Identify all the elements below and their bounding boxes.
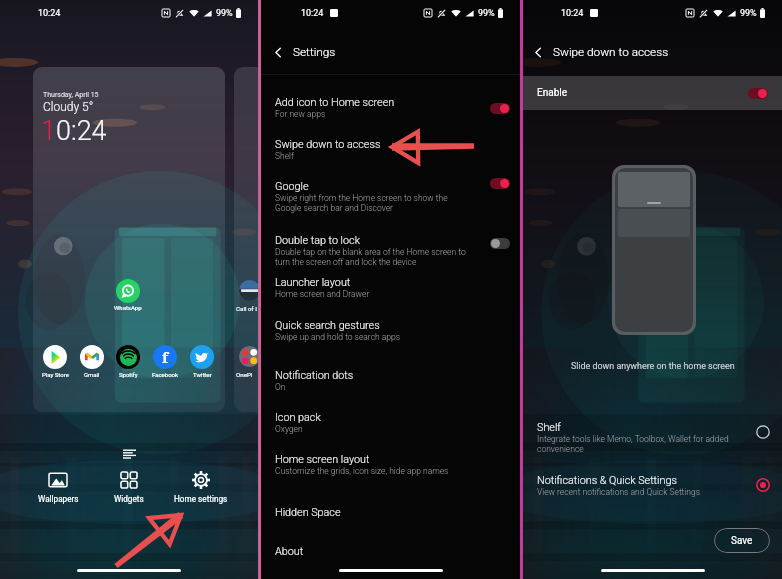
button[interactable]: Twitter [180, 345, 224, 378]
staticText: Spotify [119, 371, 138, 378]
staticText: Swipe right from the Home screen to show… [275, 193, 448, 213]
button[interactable]: Home settings [167, 471, 235, 504]
staticText: Swipe down to access [553, 45, 669, 59]
button[interactable]: Notifications & Quick Settings [756, 478, 770, 492]
staticText: Widgets [114, 494, 144, 504]
button[interactable]: f [143, 345, 187, 378]
staticText: Call of I [236, 305, 257, 312]
staticText: Cloudy 5° [43, 100, 94, 114]
button[interactable]: Back [268, 42, 288, 62]
staticText: WhatsApp [114, 304, 142, 311]
staticText: 99% [478, 8, 495, 19]
button[interactable]: Shelf [523, 421, 782, 454]
button[interactable]: Play Store [33, 345, 77, 378]
button[interactable]: Home screen layout [261, 453, 520, 476]
staticText: Facebook [152, 371, 179, 378]
staticText: Shelf [537, 421, 561, 434]
button[interactable]: Shelf [756, 425, 770, 439]
button[interactable]: Add icon to Home screen [261, 96, 520, 119]
staticText: Integrate tools like Memo, Toolbox, Wall… [537, 434, 729, 454]
staticText: Home screen layout [275, 453, 370, 466]
staticText: Gmail [84, 371, 100, 378]
staticText: OnePl [236, 371, 253, 378]
button[interactable]: Hidden Space [261, 506, 520, 519]
staticText: About [275, 545, 304, 558]
button[interactable]: Icon pack [261, 411, 520, 434]
staticText: Google [275, 180, 309, 193]
staticText: f [162, 347, 169, 367]
button[interactable]: Google [261, 180, 520, 213]
button[interactable]: Notifications & Quick Settings [523, 474, 782, 497]
button[interactable]: Notification dots [261, 369, 520, 392]
staticText: 10:24 [38, 8, 61, 19]
staticText: 99% [216, 8, 233, 19]
staticText: Twitter [193, 371, 212, 378]
staticText: Thursday, April 15 [43, 91, 99, 99]
staticText: Home settings [174, 494, 228, 504]
staticText: Icon pack [275, 411, 321, 424]
button[interactable]: Enable [523, 76, 782, 110]
staticText: Double tap to lock [275, 234, 360, 247]
staticText: View recent notifications and Quick Sett… [537, 487, 700, 497]
button[interactable]: About [261, 545, 520, 558]
button[interactable]: Spotify [106, 345, 150, 378]
button[interactable]: Wallpapers [24, 471, 92, 504]
staticText: 99% [740, 8, 757, 19]
staticText: For new apps [275, 109, 326, 119]
button[interactable]: Swipe down to access [261, 138, 520, 161]
staticText: Notification dots [275, 369, 354, 382]
staticText: Launcher layout [275, 276, 351, 289]
staticText: Home screen and Drawer [275, 289, 370, 299]
button[interactable] [116, 279, 140, 303]
staticText: Customize the grids, icon size, hide app… [275, 466, 449, 476]
staticText: Swipe down to access [275, 138, 381, 151]
button[interactable]: Double tap to lock [261, 234, 520, 267]
staticText: Oxygen [275, 424, 303, 434]
staticText: 0:24 [56, 115, 107, 147]
button[interactable]: Toggle [490, 238, 510, 249]
staticText: Save [731, 535, 753, 547]
button[interactable]: OnePlus folder [239, 346, 258, 367]
button[interactable]: Widgets [95, 471, 163, 504]
staticText: Hidden Space [275, 506, 341, 519]
staticText: Slide down anywhere on the home screen [571, 361, 735, 371]
staticText: Double tap on the blank area of the Home… [275, 247, 466, 267]
button[interactable]: Toggle [490, 103, 510, 114]
button[interactable]: Call of Duty [239, 280, 258, 301]
staticText: Settings [293, 45, 336, 59]
staticText: Swipe up and hold to search apps [275, 332, 401, 342]
staticText: Enable [537, 87, 567, 99]
staticText: On [275, 382, 286, 392]
staticText: Wallpapers [38, 494, 79, 504]
staticText: 10:24 [561, 8, 584, 19]
staticText: Shelf [275, 151, 294, 161]
staticText: 10:24 [301, 8, 324, 19]
staticText: Add icon to Home screen [275, 96, 395, 109]
button[interactable]: Launcher layout [261, 276, 520, 299]
button[interactable]: Gmail [70, 345, 114, 378]
button[interactable]: Toggle [490, 178, 510, 189]
staticText: 1 [41, 115, 56, 147]
button[interactable]: Back [528, 42, 548, 62]
staticText: Play Store [42, 371, 69, 378]
button[interactable]: Toggle [748, 88, 768, 99]
button[interactable]: Quick search gestures [261, 319, 520, 342]
staticText: Quick search gestures [275, 319, 380, 332]
staticText: Notifications & Quick Settings [537, 474, 677, 487]
button[interactable]: Page options [121, 446, 137, 462]
button[interactable]: Save [714, 528, 770, 553]
